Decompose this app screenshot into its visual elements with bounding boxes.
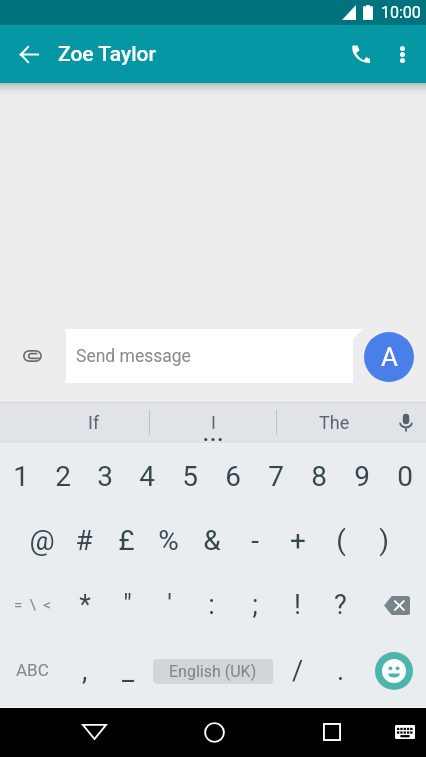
staticText: 0 — [397, 460, 413, 493]
button[interactable]: Recent apps — [308, 708, 356, 756]
button[interactable]: Attach file — [0, 329, 66, 383]
staticText: = \ < — [14, 596, 51, 614]
button[interactable]: More options — [380, 32, 424, 76]
staticText: & — [203, 524, 221, 557]
button[interactable]: Home — [190, 708, 238, 756]
staticText: " — [123, 589, 132, 621]
staticText: # — [75, 524, 93, 557]
button[interactable]: Back — [70, 708, 118, 756]
button[interactable]: + — [276, 507, 319, 573]
staticText: + — [290, 524, 306, 557]
button[interactable]: % — [147, 507, 190, 573]
button[interactable]: ; — [233, 572, 276, 638]
staticText: % — [158, 524, 179, 557]
staticText: If — [88, 412, 100, 433]
staticText: The — [319, 412, 350, 433]
button[interactable]: 4 — [126, 443, 168, 509]
button[interactable]: " — [106, 572, 148, 638]
staticText: Zoe Taylor — [58, 42, 156, 67]
staticText: 1 — [13, 460, 29, 493]
button[interactable]: Switch keyboard — [383, 710, 426, 754]
button[interactable]: 8 — [297, 443, 340, 509]
button[interactable]: English (UK) — [153, 659, 273, 684]
staticText: ! — [294, 589, 301, 621]
staticText: £ — [118, 524, 135, 557]
button[interactable]: & — [190, 507, 233, 573]
button[interactable]: Call — [336, 30, 384, 78]
staticText: 6 — [225, 460, 241, 493]
staticText: _ — [122, 655, 135, 687]
button[interactable]: ABC — [0, 641, 64, 707]
button[interactable]: ? — [319, 572, 362, 638]
staticText: ( — [336, 524, 346, 557]
staticText: . — [337, 655, 345, 687]
button[interactable]: 3 — [84, 443, 126, 509]
button[interactable]: I — [168, 402, 258, 443]
staticText: ? — [334, 589, 347, 621]
button[interactable]: Voice input — [385, 402, 426, 443]
button[interactable]: - — [233, 507, 276, 573]
staticText: , — [82, 655, 88, 687]
staticText: ; — [252, 589, 258, 621]
button[interactable]: 7 — [254, 443, 297, 509]
button[interactable]: 6 — [211, 443, 254, 509]
button[interactable]: Navigate up — [5, 30, 53, 78]
button[interactable]: * — [64, 572, 106, 638]
button[interactable]: = \ < — [0, 572, 64, 638]
button[interactable]: : — [190, 572, 233, 638]
staticText: ABC — [16, 660, 49, 680]
staticText: A — [381, 342, 398, 372]
staticText: 8 — [311, 460, 327, 493]
staticText: ' — [167, 589, 172, 621]
staticText: * — [79, 589, 91, 621]
button[interactable]: 9 — [340, 443, 383, 509]
button[interactable]: If — [49, 402, 139, 443]
button[interactable]: 5 — [168, 443, 211, 509]
button[interactable]: ) — [362, 507, 405, 573]
staticText: / — [292, 655, 304, 687]
staticText: - — [251, 524, 259, 557]
staticText: : — [208, 589, 215, 621]
staticText: 5 — [182, 460, 198, 493]
button[interactable]: @ — [21, 507, 63, 573]
button[interactable]: ! — [276, 572, 319, 638]
staticText: I — [211, 412, 216, 433]
button[interactable] — [66, 329, 363, 383]
button[interactable]: 1 — [0, 443, 42, 509]
button[interactable]: 2 — [42, 443, 84, 509]
button[interactable]: ' — [148, 572, 190, 638]
button[interactable]: Send — [364, 332, 414, 382]
button[interactable]: # — [63, 507, 105, 573]
staticText: 2 — [55, 460, 71, 493]
button[interactable]: _ — [107, 641, 149, 707]
staticText: ) — [379, 524, 389, 557]
button[interactable]: 0 — [383, 443, 426, 509]
button[interactable]: ( — [319, 507, 362, 573]
button[interactable]: Backspace — [362, 572, 426, 638]
button[interactable]: £ — [105, 507, 147, 573]
button[interactable]: The — [289, 402, 379, 443]
staticText: 10:00 — [381, 3, 421, 22]
staticText: Send message — [76, 346, 191, 367]
button[interactable]: Emoji — [373, 650, 415, 692]
staticText: 3 — [97, 460, 113, 493]
staticText: @ — [29, 524, 55, 557]
staticText: 9 — [354, 460, 370, 493]
staticText: 7 — [268, 460, 284, 493]
staticText: 4 — [139, 460, 155, 493]
button[interactable]: , — [64, 641, 106, 707]
staticText: English (UK) — [169, 662, 257, 681]
button[interactable]: . — [320, 641, 362, 707]
button[interactable]: / — [277, 641, 319, 707]
